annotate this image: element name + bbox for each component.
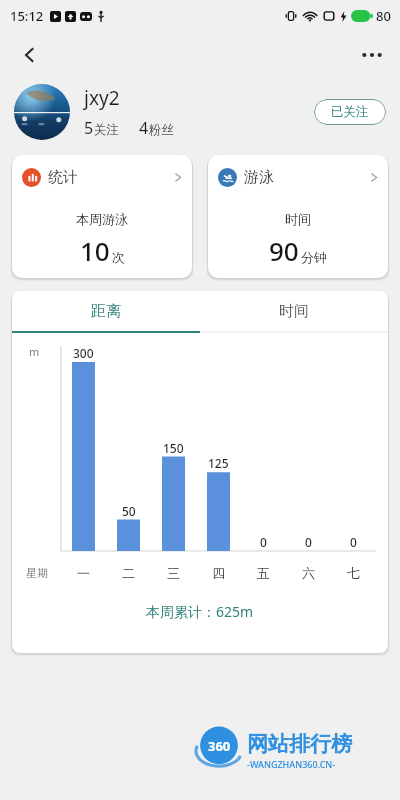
staticText: 0 [305,534,312,550]
staticText: 150 [163,440,184,456]
button[interactable]: 距离 [12,291,200,332]
staticText: 125 [208,455,229,471]
staticText: 二 [122,565,135,581]
staticText: 0 [350,534,357,550]
staticText: 50 [122,503,136,519]
staticText: 七 [347,565,360,581]
staticText: 本周游泳 [76,211,128,227]
button[interactable]: 游泳 [208,155,388,278]
staticText: 15:12 [10,7,44,25]
staticText: 已关注 [331,104,369,120]
staticText: 距离 [91,302,121,321]
staticText: 300 [73,345,94,361]
staticText: 80 [376,7,391,25]
staticText: 粉丝 [149,122,174,138]
staticText: 六 [302,565,315,581]
staticText: 10 [80,233,110,268]
staticText: 游泳 [244,168,274,187]
staticText: 三 [167,565,180,581]
staticText: 一 [77,565,90,581]
staticText: 关注 [94,122,119,138]
button[interactable]: 头像 [14,84,70,140]
staticText: 本周累计：625m [146,602,254,621]
staticText: 时间 [285,211,311,227]
staticText: 网站排行榜 [247,731,352,757]
staticText: 360 [208,737,231,755]
staticText: 90 [269,233,299,268]
staticText: 4 [139,117,149,139]
staticText: -WANGZHAN360.CN- [247,758,336,770]
staticText: 时间 [279,302,309,321]
button[interactable]: 统计 [12,155,192,278]
staticText: 分钟 [301,249,327,265]
staticText: 五 [257,565,270,581]
staticText: 次 [112,249,125,265]
staticText: jxy2 [84,85,120,111]
staticText: 四 [212,565,225,581]
button[interactable]: 已关注 [314,99,386,125]
button[interactable]: 更多 [352,35,392,75]
button[interactable]: 时间 [200,291,388,332]
staticText: 0 [260,534,267,550]
staticText: 星期 [26,566,48,580]
staticText: m [29,344,40,359]
staticText: 5 [84,117,94,139]
staticText: 统计 [48,168,78,187]
button[interactable]: 返回 [10,35,50,75]
